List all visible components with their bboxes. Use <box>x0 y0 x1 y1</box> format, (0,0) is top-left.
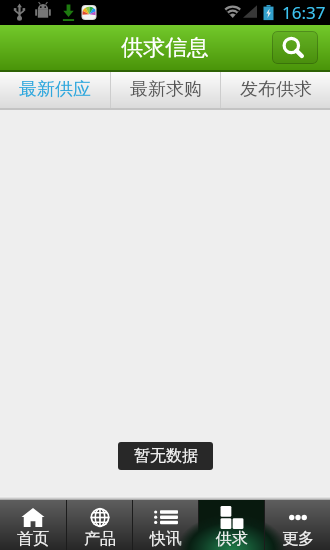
staticText: 最新求购 <box>130 78 202 101</box>
button[interactable]: 更多 <box>265 500 330 550</box>
button[interactable]: 首页 <box>0 500 66 550</box>
staticText: 16:37 <box>282 1 326 24</box>
button[interactable]: 最新求购 <box>111 72 220 108</box>
staticText: 发布供求 <box>240 78 312 101</box>
staticText: 更多 <box>282 529 314 549</box>
button[interactable]: 暂无数据 <box>118 442 213 470</box>
button[interactable]: 快讯 <box>133 500 198 550</box>
staticText: 首页 <box>17 529 49 549</box>
button[interactable]: 产品 <box>67 500 132 550</box>
button[interactable]: 最新供应 <box>0 72 110 108</box>
button[interactable]: 发布供求 <box>221 72 330 108</box>
staticText: 最新供应 <box>19 78 91 101</box>
staticText: 供求 <box>216 529 248 549</box>
staticText: 快讯 <box>150 529 182 549</box>
button[interactable]: 供求 <box>199 500 264 550</box>
staticText: 供求信息 <box>121 34 209 62</box>
staticText: 暂无数据 <box>134 446 198 466</box>
staticText: 产品 <box>84 529 116 549</box>
button[interactable]: Search <box>272 31 318 64</box>
